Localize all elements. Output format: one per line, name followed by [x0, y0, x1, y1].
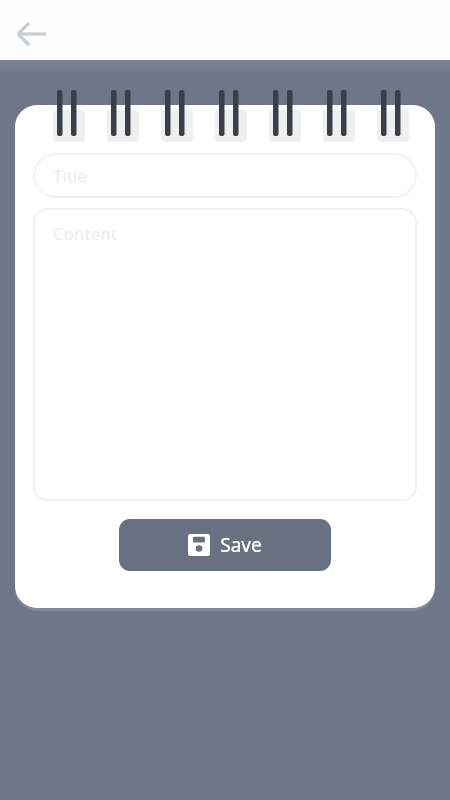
staticText: Save: [220, 532, 262, 558]
button[interactable]: Title: [33, 153, 417, 198]
button[interactable]: Save: [119, 519, 331, 571]
button[interactable]: Back: [8, 10, 56, 58]
staticText: Content: [53, 222, 117, 245]
staticText: Title: [53, 164, 87, 187]
